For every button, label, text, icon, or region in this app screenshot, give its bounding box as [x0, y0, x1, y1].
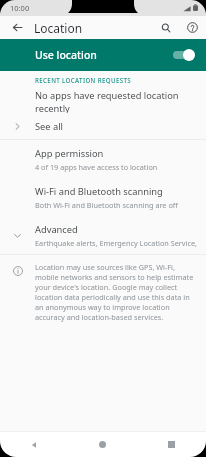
staticText: No apps have requested location recently	[35, 89, 200, 113]
staticText: Advanced	[35, 223, 78, 236]
staticText: 4 of 19 apps have access to location	[35, 162, 158, 172]
staticText: Both Wi-Fi and Bluetooth scanning are of…	[35, 200, 178, 210]
staticText: See all	[35, 120, 64, 133]
button[interactable]: Recent apps	[137, 432, 206, 457]
staticText: Earthquake alerts, Emergency Location Se…	[35, 238, 200, 248]
button[interactable]: Wi-Fi and Bluetooth scanning	[0, 178, 206, 216]
staticText: Location may use sources like GPS, Wi-Fi…	[35, 262, 198, 322]
button[interactable]: Help	[179, 16, 206, 39]
button[interactable]: Home	[68, 432, 137, 457]
button[interactable]: Search	[152, 16, 179, 39]
staticText: Use location	[35, 48, 97, 62]
staticText: Location	[34, 20, 83, 36]
staticText: Wi-Fi and Bluetooth scanning	[35, 185, 163, 198]
button[interactable]: No apps have requested location recently	[0, 89, 206, 113]
button[interactable]: See all	[0, 113, 206, 139]
staticText: RECENT LOCATION REQUESTS	[35, 76, 132, 84]
button[interactable]: Back	[0, 432, 68, 457]
button[interactable]: Advanced	[0, 216, 206, 254]
button[interactable]: App permission	[0, 140, 206, 178]
staticText: App permission	[35, 147, 104, 160]
staticText: 10:00	[10, 3, 30, 13]
button[interactable]: Use location	[0, 39, 206, 71]
button[interactable]: Back	[0, 16, 34, 39]
